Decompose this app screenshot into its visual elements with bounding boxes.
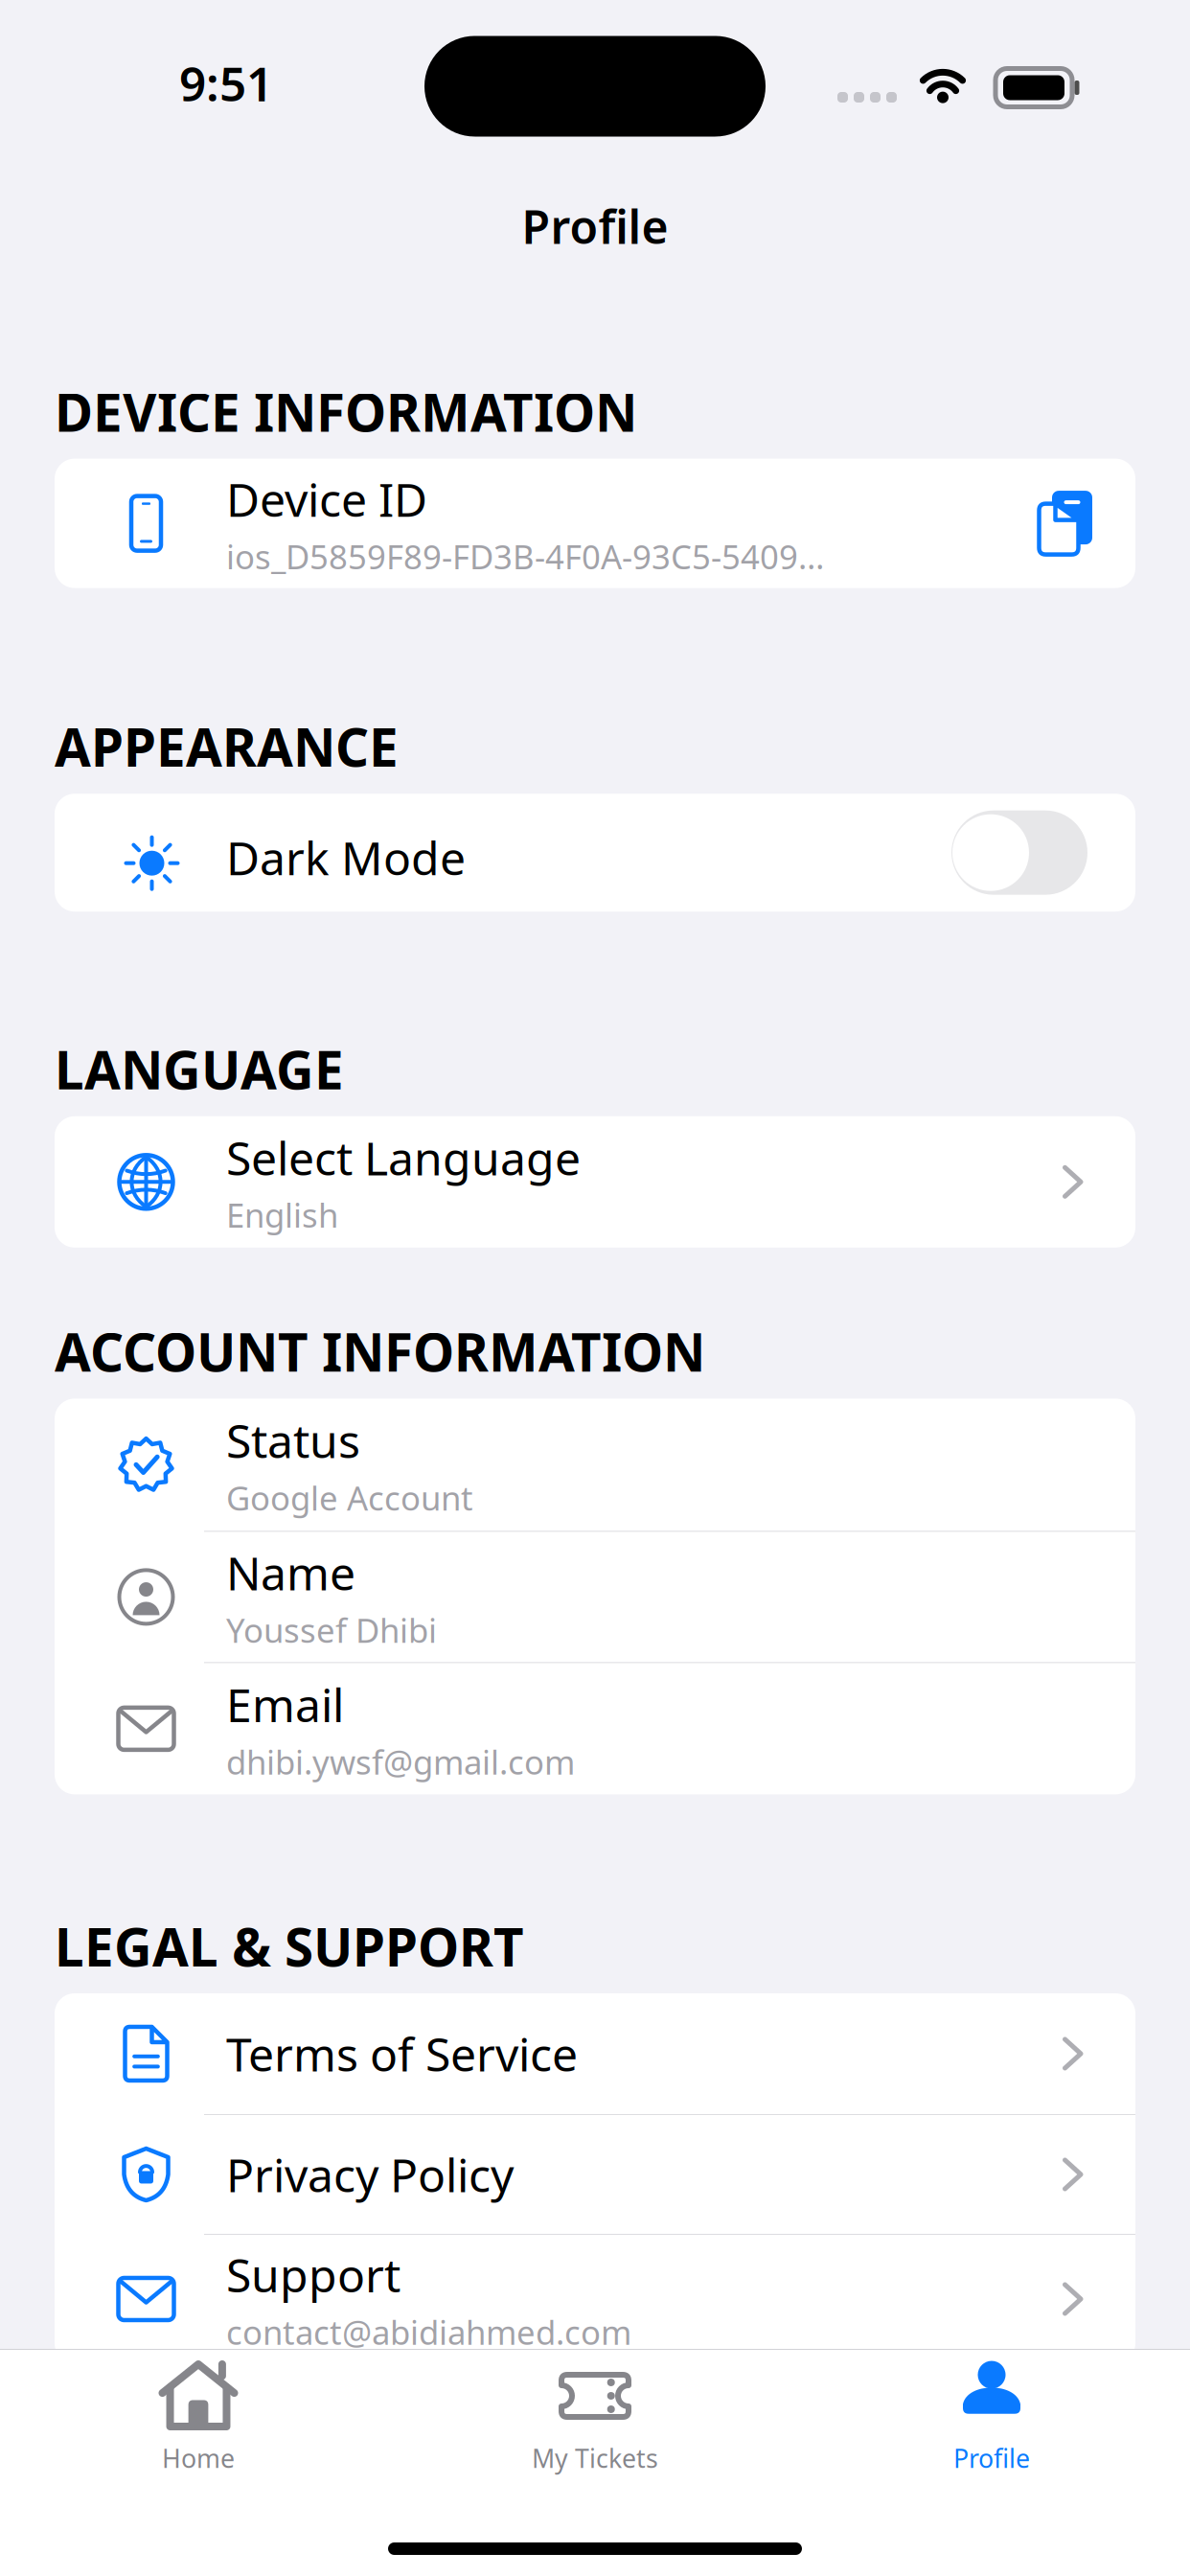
- staticText: Profile: [522, 196, 668, 257]
- staticText: LANGUAGE: [55, 1034, 344, 1104]
- staticText: English: [226, 1193, 338, 1237]
- staticText: Name: [226, 1542, 355, 1603]
- button[interactable]: Terms of Service: [55, 1993, 1135, 2114]
- staticText: Device ID: [226, 468, 427, 529]
- button[interactable]: Privacy Policy: [55, 2115, 1135, 2234]
- staticText: ACCOUNT INFORMATION: [55, 1317, 705, 1386]
- staticText: Email: [226, 1674, 344, 1735]
- staticText: Select Language: [226, 1127, 581, 1188]
- staticText: ios_D5859F89-FD3B-4F0A-93C5-5409…: [226, 534, 824, 578]
- staticText: APPEARANCE: [55, 712, 399, 781]
- staticText: contact@abidiahmed.com: [226, 2310, 631, 2354]
- staticText: LEGAL & SUPPORT: [55, 1911, 524, 1981]
- button[interactable]: Select Language: [55, 1116, 1135, 1248]
- button[interactable]: Dark Mode: [951, 810, 1087, 895]
- button[interactable]: Home: [0, 2351, 397, 2470]
- staticText: Terms of Service: [226, 2023, 578, 2084]
- button[interactable]: Profile: [793, 2351, 1190, 2470]
- staticText: Dark Mode: [226, 827, 466, 888]
- staticText: Profile: [953, 2441, 1030, 2475]
- staticText: Google Account: [226, 1476, 473, 1520]
- staticText: Support: [226, 2244, 400, 2305]
- button[interactable]: My Tickets: [397, 2351, 793, 2470]
- staticText: Home: [162, 2441, 235, 2475]
- staticText: Youssef Dhibi: [226, 1608, 437, 1652]
- button[interactable]: Support: [55, 2235, 1135, 2363]
- staticText: My Tickets: [532, 2441, 658, 2475]
- staticText: DEVICE INFORMATION: [55, 377, 637, 446]
- button[interactable]: Device ID: [55, 459, 1135, 588]
- staticText: Status: [226, 1410, 360, 1471]
- staticText: 9:51: [179, 51, 273, 114]
- staticText: dhibi.ywsf@gmail.com: [226, 1740, 575, 1784]
- staticText: Privacy Policy: [226, 2144, 514, 2205]
